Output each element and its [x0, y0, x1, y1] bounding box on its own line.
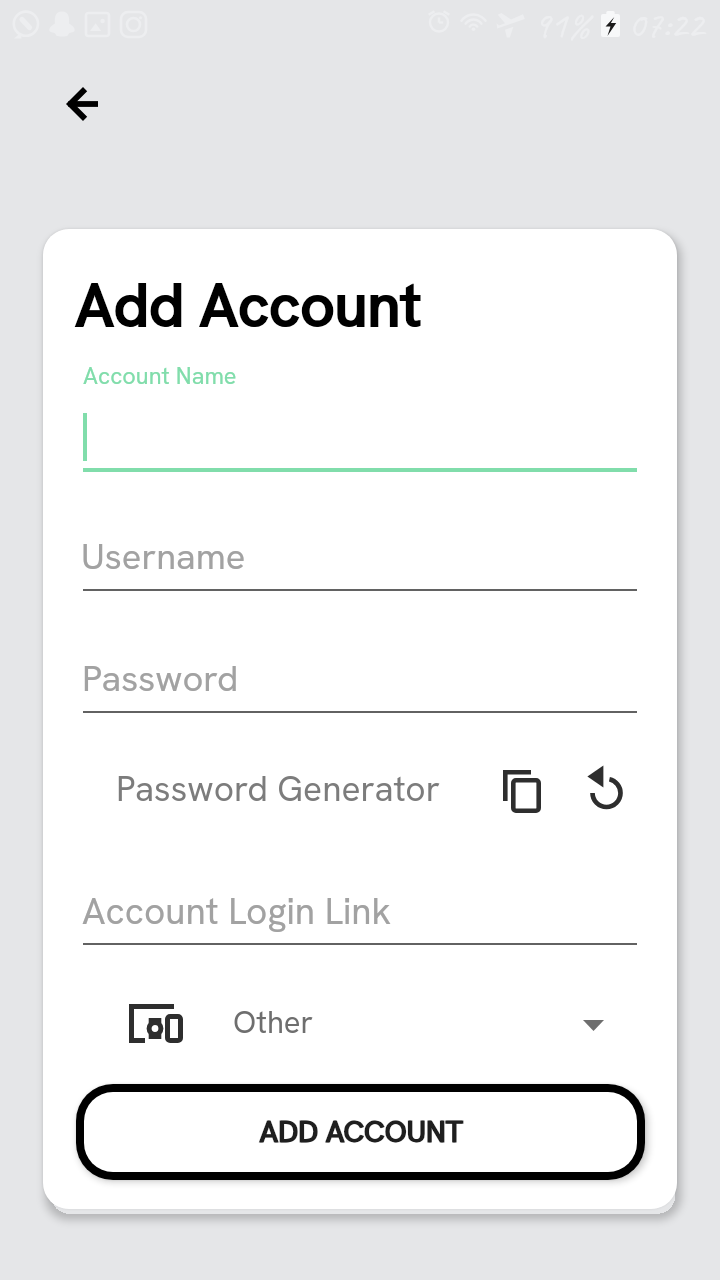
- button[interactable]: ADD ACCOUNT: [76, 1084, 645, 1180]
- staticText: Password Generator: [116, 766, 441, 812]
- staticText: Add Account: [75, 266, 421, 344]
- staticText: Account Login Link: [82, 887, 392, 935]
- staticText: ADD ACCOUNT: [260, 1113, 464, 1151]
- staticText: Other: [233, 1002, 314, 1042]
- button[interactable]: Select device type: [563, 995, 623, 1055]
- staticText: Username: [81, 533, 246, 580]
- staticText: Add Account: [76, 266, 422, 344]
- button[interactable]: Generate password: [582, 761, 642, 821]
- staticText: Password: [82, 655, 239, 702]
- button[interactable]: Copy password: [493, 760, 553, 820]
- staticText: Account Name: [83, 360, 237, 391]
- button[interactable]: Back: [50, 81, 114, 145]
- staticText: ADD ACCOUNT: [259, 1113, 463, 1151]
